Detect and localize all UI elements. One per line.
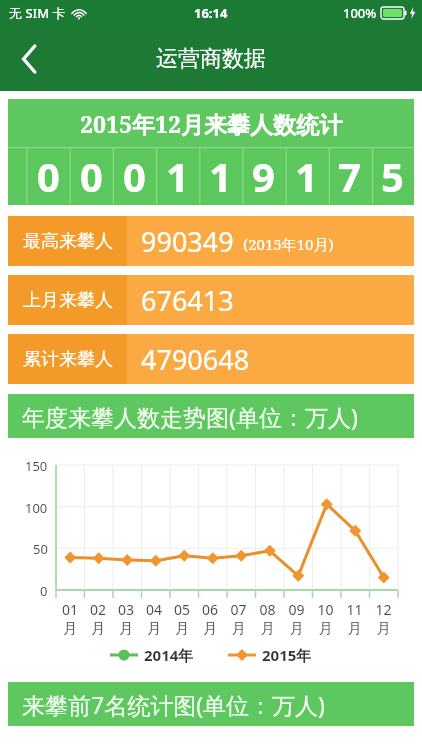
staticText: 7 [338,149,361,203]
staticText: 9 [252,149,275,203]
staticText: 0 [80,149,103,203]
staticText: 09月 [282,600,311,637]
staticText: 运营商数据 [156,45,266,73]
staticText: 07月 [224,600,253,637]
staticText: 上月来攀人 [23,289,113,312]
button[interactable]: 上月来攀人 [8,275,414,325]
staticText: 03月 [112,600,140,637]
staticText: 1 [209,149,232,203]
staticText: 01月 [56,600,84,637]
staticText: 676413 [141,282,234,319]
staticText: 来攀前7名统计图(单位：万人) [22,689,325,720]
staticText: 2015年12月来攀人数统计 [80,108,342,139]
staticText: 150 [25,457,48,475]
staticText: 05月 [168,600,196,637]
staticText: 100 [25,499,48,517]
staticText: 1 [295,149,318,203]
staticText: 0 [123,149,146,203]
staticText: 02月 [84,600,112,637]
staticText: 12月 [369,600,398,637]
staticText: 04月 [140,600,168,637]
staticText: 5 [381,149,404,203]
staticText: 50 [33,540,48,558]
staticText: (2015年10月) [243,234,334,254]
staticText: 1 [166,149,189,203]
button[interactable]: 最高来攀人 [8,216,414,266]
staticText: 0 [37,149,60,203]
staticText: 10月 [311,600,340,637]
staticText: 最高来攀人 [23,230,113,253]
staticText: 无 SIM 卡 [9,4,66,22]
staticText: 990349 [141,223,234,260]
staticText: 16:14 [194,4,228,22]
button[interactable]: 2014年 [110,645,194,665]
button[interactable]: 2015年 [228,645,312,665]
button[interactable]: 来攀前7名统计图(单位：万人) [8,682,414,726]
button[interactable]: 累计来攀人 [8,334,414,384]
staticText: 4790648 [141,341,250,378]
staticText: 08月 [253,600,282,637]
staticText: 0 [40,582,48,600]
staticText: 累计来攀人 [23,348,113,371]
button[interactable]: 年度来攀人数走势图(单位：万人) [8,394,414,438]
staticText: 06月 [196,600,224,637]
staticText: 100% [343,4,377,22]
staticText: 年度来攀人数走势图(单位：万人) [22,401,358,432]
staticText: 11月 [340,600,369,637]
staticText: 2014年 [144,645,194,665]
button[interactable]: Back [6,35,54,83]
staticText: 2015年 [262,645,312,665]
